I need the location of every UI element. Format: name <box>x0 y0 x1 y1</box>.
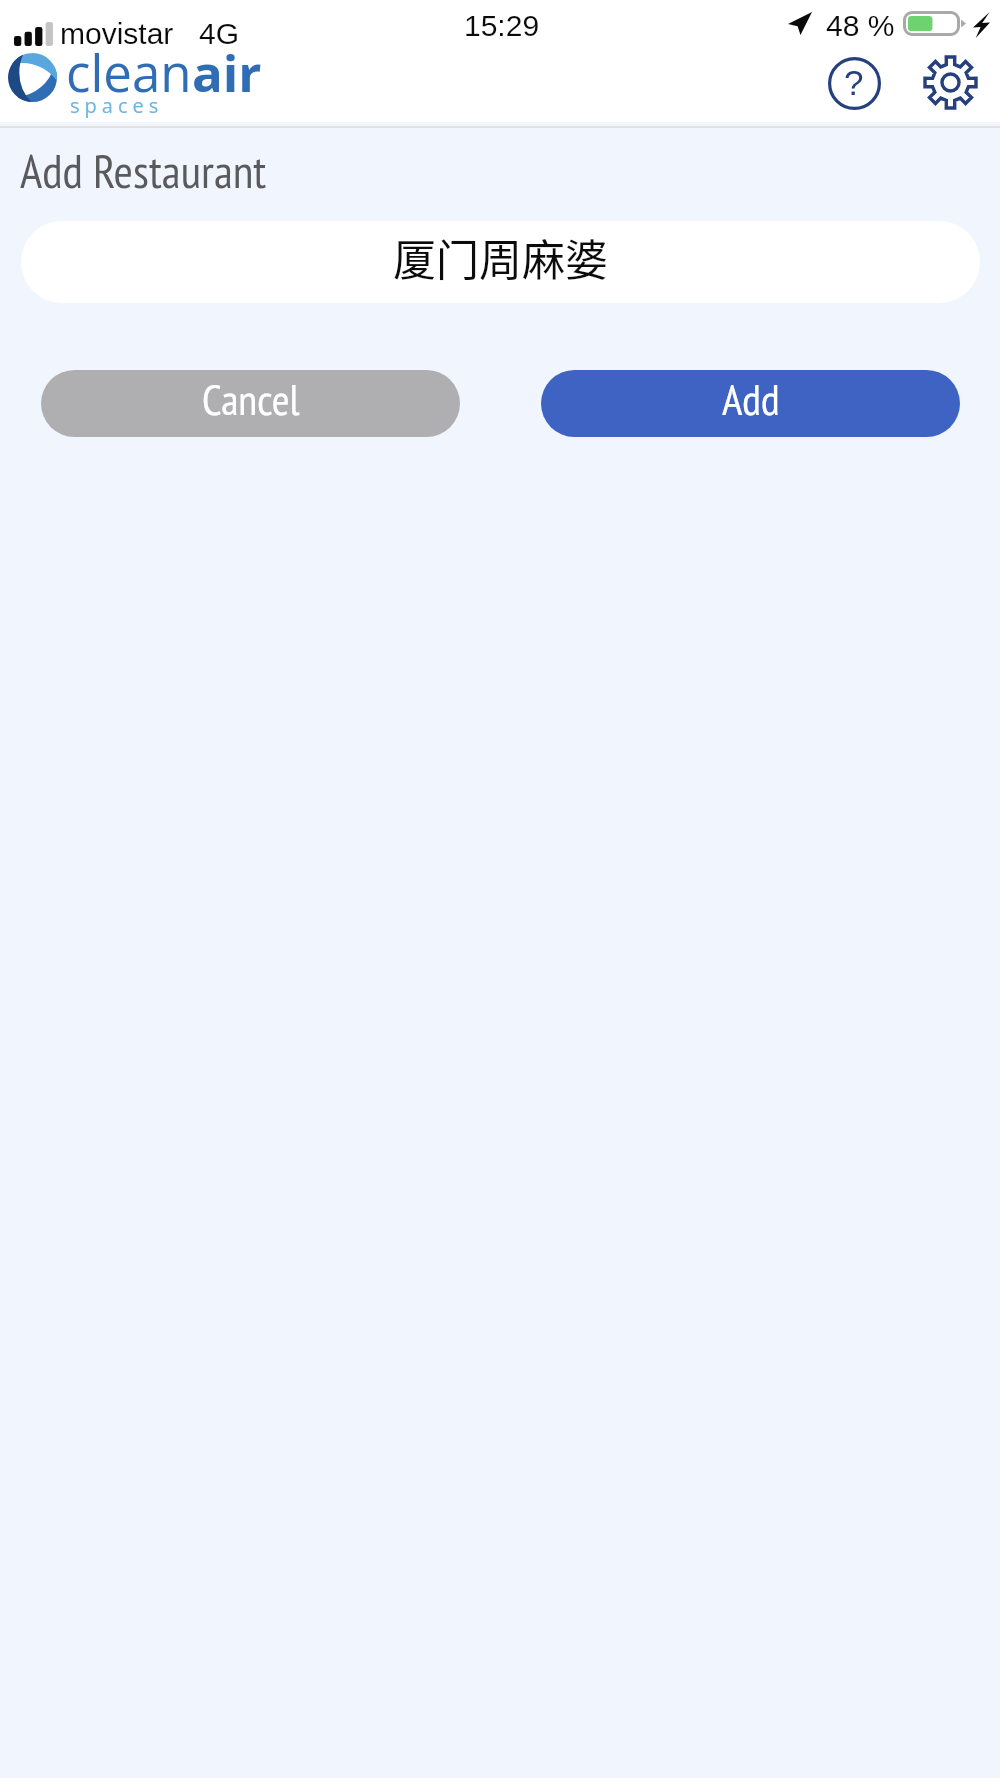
staticText: Add <box>722 371 780 427</box>
staticText: movistar <box>60 17 174 51</box>
staticText: spaces <box>70 92 164 119</box>
button[interactable]: 厦门周麻婆 <box>21 221 980 303</box>
staticText: Add Restaurant <box>20 140 267 201</box>
button[interactable]: Add <box>541 370 960 437</box>
staticText: ? <box>844 63 864 102</box>
staticText: Cancel <box>202 371 300 427</box>
staticText: 15:29 <box>464 9 540 43</box>
staticText: 4G <box>199 17 240 51</box>
staticText: 厦门周麻婆 <box>393 226 608 288</box>
button[interactable]: Settings <box>918 50 982 114</box>
staticText: clean <box>66 37 192 106</box>
staticText: 48 % <box>826 9 895 43</box>
button[interactable]: Cancel <box>41 370 460 437</box>
button[interactable]: Help <box>822 51 886 115</box>
staticText: air <box>192 37 262 106</box>
